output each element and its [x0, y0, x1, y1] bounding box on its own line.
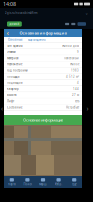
- button[interactable]: Марш.: [35, 176, 51, 188]
- staticText: Карта: [8, 182, 15, 186]
- staticText: Основная информация: [23, 117, 63, 123]
- staticText: Назначение: [7, 62, 22, 66]
- staticText: ›: [86, 104, 88, 113]
- button[interactable]: Избр.: [51, 176, 66, 188]
- staticText: Жилой дом: [62, 44, 79, 48]
- staticText: 4: [77, 81, 79, 84]
- button[interactable]: Menu: [77, 22, 86, 26]
- staticText: Основная информация: [19, 30, 66, 36]
- staticText: ‹: [6, 29, 8, 37]
- staticText: Состояние: [7, 106, 22, 109]
- button[interactable]: Ещё сведения: [27, 38, 47, 41]
- button[interactable]: Previous: [0, 29, 4, 188]
- staticText: домой: [9, 22, 19, 26]
- staticText: Основные: [8, 38, 22, 41]
- staticText: 4 512 м²: [66, 75, 79, 78]
- staticText: ‹: [1, 104, 3, 113]
- button[interactable]: Back: [4, 29, 11, 37]
- staticText: есть: [75, 99, 79, 103]
- staticText: Год постройки: [7, 69, 28, 72]
- staticText: Подъездов: [7, 81, 23, 84]
- staticText: Марш.: [39, 182, 47, 186]
- button[interactable]: Ещё: [66, 176, 82, 188]
- staticText: Площадь: [7, 75, 19, 78]
- staticText: 2gis.ru/novosibirsk/firm: [5, 11, 37, 15]
- button[interactable]: Back: [65, 23, 69, 25]
- button[interactable]: Home: [7, 21, 22, 26]
- staticText: Тип здания: [7, 44, 23, 48]
- button[interactable]: Карта: [4, 176, 20, 188]
- staticText: 14:08: [3, 0, 16, 8]
- staticText: Материал: [7, 56, 19, 60]
- staticText: 27 м: [72, 93, 79, 97]
- staticText: Ещё: [72, 182, 76, 186]
- staticText: ⌄: [85, 11, 88, 15]
- button[interactable]: Forward: [71, 23, 75, 25]
- staticText: Высота: [7, 93, 16, 97]
- staticText: Не требует: [66, 106, 79, 109]
- staticText: Жилое: [70, 62, 79, 66]
- staticText: Этажей: [7, 50, 16, 54]
- staticText: Поиск: [23, 182, 31, 186]
- button[interactable]: Основные: [7, 38, 23, 41]
- staticText: 9: [77, 50, 79, 54]
- staticText: 144: [73, 87, 79, 91]
- staticText: Квартир: [7, 87, 19, 91]
- staticText: Избр.: [55, 182, 63, 186]
- button[interactable]: Поиск: [20, 176, 35, 188]
- staticText: 1983: [71, 69, 79, 72]
- staticText: Панельный: [64, 56, 79, 60]
- staticText: Ещё сведения: [28, 38, 46, 41]
- staticText: Лифт: [7, 99, 14, 103]
